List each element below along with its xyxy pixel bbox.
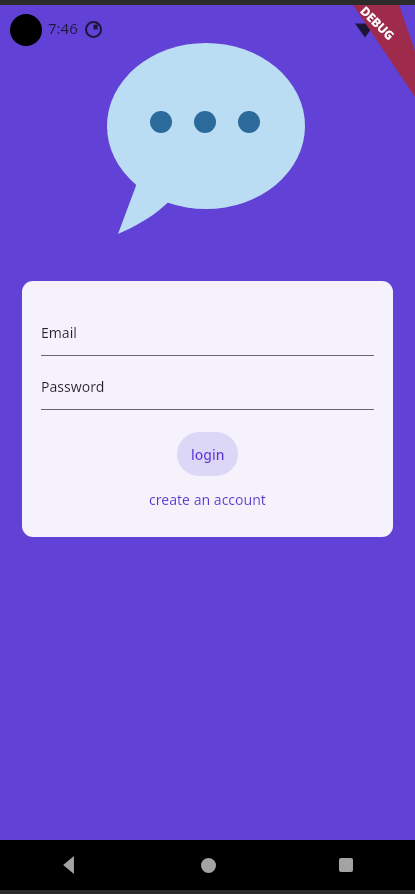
staticText: Password — [41, 377, 105, 396]
button[interactable]: Password — [22, 377, 393, 396]
button[interactable]: create an account — [141, 487, 274, 512]
button[interactable]: Back — [0, 840, 139, 890]
staticText: login — [191, 445, 225, 464]
staticText: Email — [41, 323, 77, 342]
button[interactable]: Home — [139, 840, 277, 890]
button[interactable]: Email — [22, 323, 393, 342]
button[interactable]: Recent apps — [277, 840, 415, 890]
staticText: DEBUG — [357, 2, 398, 43]
button[interactable]: login — [177, 432, 238, 476]
staticText: 7:46 — [48, 18, 78, 38]
staticText: create an account — [149, 490, 266, 509]
